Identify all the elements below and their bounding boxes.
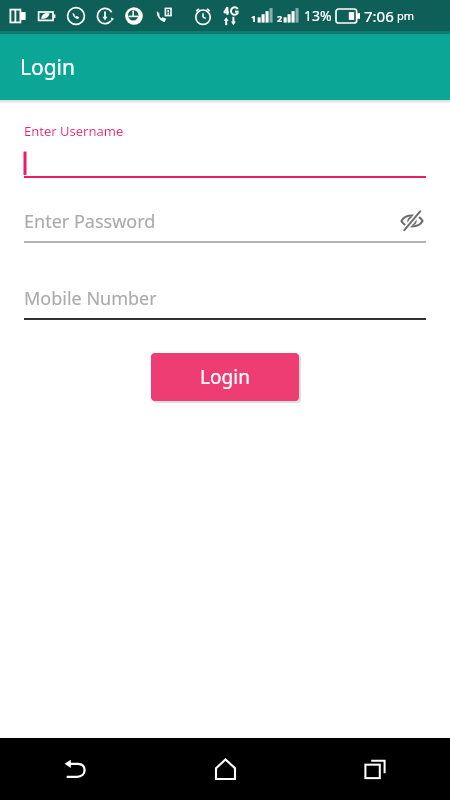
button[interactable]: Enter Password <box>24 206 426 243</box>
button[interactable]: Recent apps <box>300 738 450 800</box>
staticText: 2 <box>277 12 283 24</box>
staticText: pm <box>397 8 415 23</box>
staticText: Enter Password <box>24 209 398 234</box>
button[interactable]: Mobile Number <box>24 283 426 320</box>
button[interactable]: Login <box>151 353 299 401</box>
staticText: Login <box>200 364 250 390</box>
staticText: Mobile Number <box>24 286 157 311</box>
staticText: Login <box>20 53 76 82</box>
button[interactable]: Home <box>150 738 300 800</box>
staticText: 7:06 <box>364 6 394 26</box>
button[interactable]: Enter Username <box>24 122 426 178</box>
staticText: Enter Username <box>24 122 124 140</box>
button[interactable]: Back <box>0 738 150 800</box>
button[interactable]: Toggle password visibility <box>398 207 426 235</box>
staticText: 1 <box>251 12 257 24</box>
staticText: 13% <box>304 6 332 25</box>
